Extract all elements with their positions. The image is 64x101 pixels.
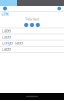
button[interactable]: Label <box>0 28 64 34</box>
button[interactable]: Link <box>1 12 8 16</box>
staticText: Label <box>2 28 11 33</box>
button[interactable]: Label <box>0 46 64 53</box>
button[interactable]: Action <box>24 23 28 27</box>
button[interactable]: Label <box>0 34 64 40</box>
button[interactable]: Longer label <box>0 40 64 46</box>
staticText: Label <box>2 35 11 39</box>
staticText: Longer label <box>2 41 23 45</box>
staticText: Title text <box>25 17 39 21</box>
button[interactable]: Action <box>36 23 40 27</box>
button[interactable]: Back <box>1 5 8 12</box>
staticText: Label <box>2 47 11 52</box>
staticText: Link <box>1 12 8 16</box>
button[interactable]: Action <box>30 23 34 27</box>
button[interactable]: Add <box>56 5 62 12</box>
